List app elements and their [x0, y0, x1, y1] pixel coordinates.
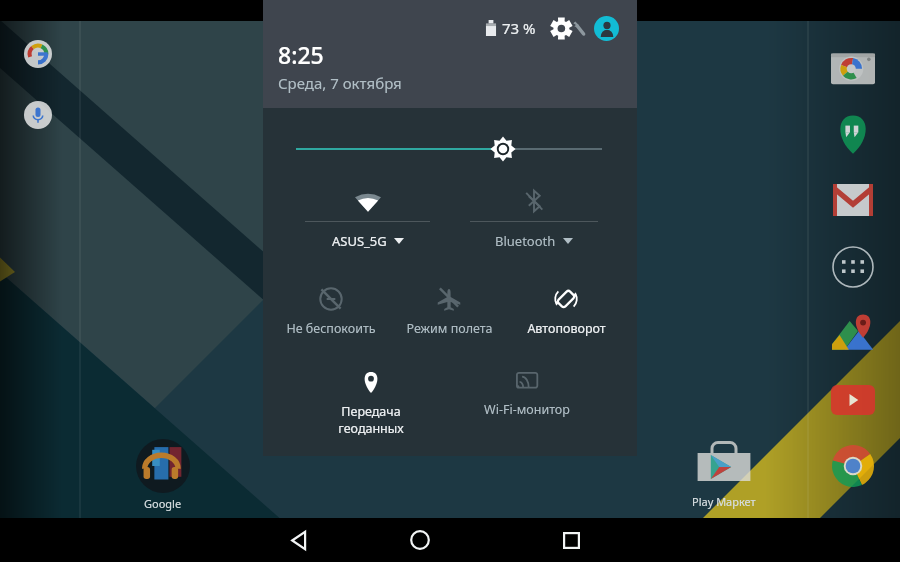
button[interactable]: Brightness	[263, 108, 637, 178]
staticText: Bluetooth	[495, 232, 556, 250]
button[interactable]: Settings	[551, 17, 585, 40]
button[interactable]: Автоповорот	[508, 287, 624, 337]
button[interactable]: User profile	[594, 16, 619, 41]
staticText: Передача геоданных	[338, 403, 404, 436]
staticText: ASUS_5G	[332, 232, 387, 250]
staticText: Play Маркет	[692, 494, 756, 509]
button[interactable]: Recents	[495, 518, 647, 562]
staticText: 8:25	[278, 39, 324, 70]
staticText: Среда, 7 октября	[278, 73, 402, 93]
staticText: Wi-Fi-монитор	[484, 401, 570, 418]
button[interactable]: Back	[252, 518, 344, 562]
button[interactable]: Wi-Fi-монитор	[469, 368, 585, 418]
button[interactable]: Battery	[485, 18, 536, 38]
button[interactable]: Режим полета	[391, 287, 507, 337]
staticText: Не беспокоить	[286, 320, 376, 337]
staticText: Автоповорот	[527, 320, 606, 337]
button[interactable]: Home	[344, 518, 495, 562]
button[interactable]: ASUS_5G	[305, 189, 430, 250]
button[interactable]: Bluetooth	[470, 189, 598, 250]
staticText: Режим полета	[406, 320, 493, 337]
staticText: 73 %	[502, 18, 536, 38]
button[interactable]: Не беспокоить	[273, 287, 389, 337]
staticText: Google	[144, 496, 182, 511]
button[interactable]: Передача геоданных	[313, 370, 429, 436]
